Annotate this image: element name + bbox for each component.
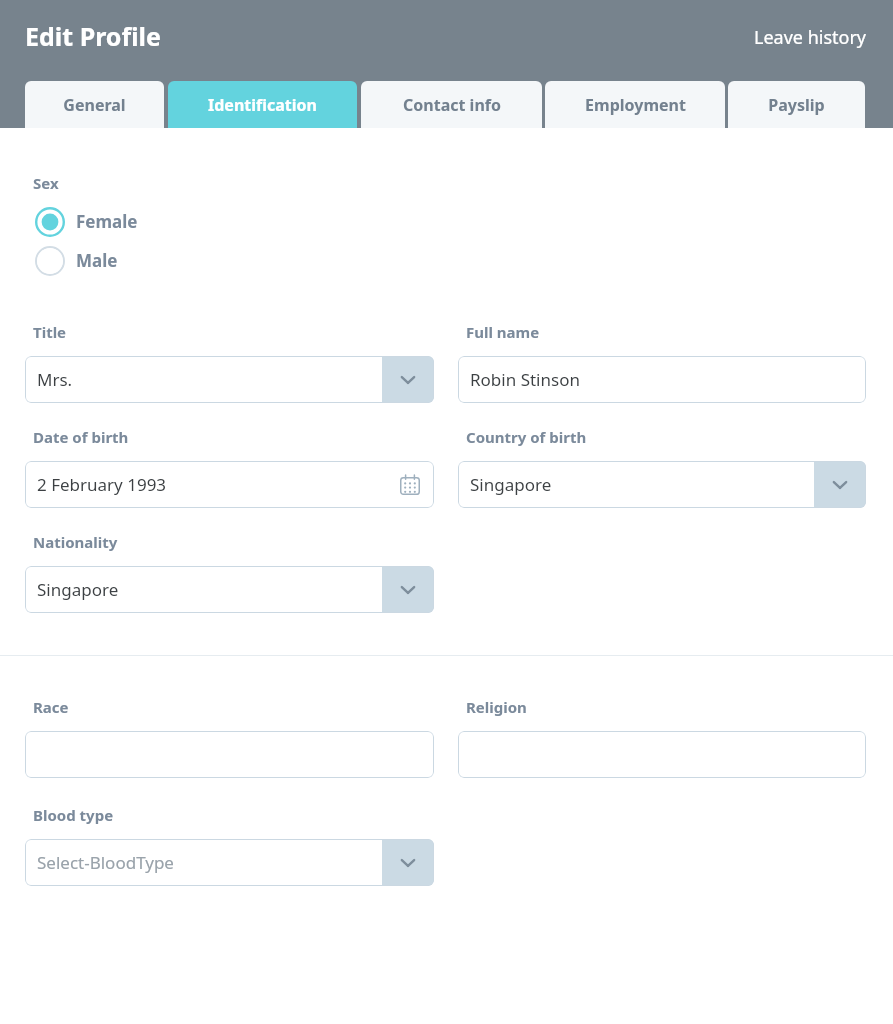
staticText: Religion bbox=[466, 697, 527, 717]
button[interactable]: Leave history bbox=[754, 25, 867, 50]
button[interactable] bbox=[25, 731, 434, 778]
button[interactable]: Edit Profile bbox=[25, 19, 161, 53]
button[interactable]: Contact info bbox=[361, 81, 542, 128]
staticText: Payslip bbox=[768, 94, 825, 116]
other: Pick date bbox=[400, 475, 420, 495]
staticText: Male bbox=[76, 249, 118, 272]
button[interactable]: 2 February 1993 bbox=[25, 461, 434, 508]
staticText: Contact info bbox=[403, 94, 501, 116]
staticText: Country of birth bbox=[466, 427, 587, 447]
staticText: Nationality bbox=[33, 532, 118, 552]
staticText: 2 February 1993 bbox=[37, 473, 167, 496]
button[interactable]: Payslip bbox=[728, 81, 865, 128]
button[interactable]: Robin Stinson bbox=[458, 356, 866, 403]
button[interactable]: Male bbox=[0, 241, 118, 280]
staticText: Blood type bbox=[33, 805, 114, 825]
staticText: Title bbox=[33, 322, 67, 342]
button[interactable]: Female bbox=[0, 202, 138, 241]
button[interactable]: Select Mrs. bbox=[25, 356, 434, 403]
staticText: General bbox=[63, 94, 126, 116]
staticText: Singapore bbox=[37, 578, 119, 601]
button[interactable] bbox=[458, 731, 866, 778]
staticText: Sex bbox=[33, 173, 59, 193]
staticText: Date of birth bbox=[33, 427, 129, 447]
button[interactable]: Select Select-BloodType bbox=[25, 839, 434, 886]
staticText: Mrs. bbox=[37, 368, 73, 391]
staticText: Robin Stinson bbox=[470, 368, 580, 391]
staticText: Female bbox=[76, 210, 138, 233]
button[interactable]: Select Singapore bbox=[25, 566, 434, 613]
button[interactable]: Identification bbox=[168, 81, 357, 128]
staticText: Employment bbox=[585, 94, 686, 116]
staticText: Identification bbox=[208, 94, 317, 116]
staticText: Select-BloodType bbox=[37, 851, 174, 874]
staticText: Singapore bbox=[470, 473, 552, 496]
button[interactable]: Employment bbox=[545, 81, 725, 128]
button[interactable]: General bbox=[25, 81, 164, 128]
staticText: Full name bbox=[466, 322, 540, 342]
button[interactable]: Select Singapore bbox=[458, 461, 866, 508]
staticText: Race bbox=[33, 697, 69, 717]
